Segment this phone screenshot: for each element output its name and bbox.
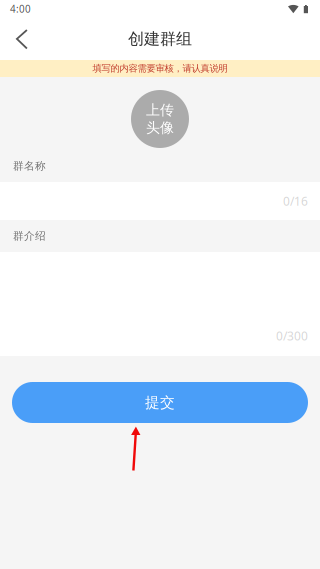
staticText: 提交 <box>145 393 175 412</box>
staticText: 群介绍 <box>13 229 46 243</box>
staticText: 0/300 <box>276 328 308 344</box>
staticText: 4:00 <box>10 2 31 16</box>
staticText: 上传 头像 <box>146 101 174 137</box>
staticText: 0/16 <box>283 193 308 209</box>
button[interactable]: 上传 头像 <box>131 90 189 148</box>
staticText: 创建群组 <box>128 29 192 49</box>
button[interactable]: 提交 <box>12 382 308 423</box>
staticText: 群名称 <box>13 159 46 173</box>
staticText: 填写的内容需要审核，请认真说明 <box>92 63 227 74</box>
button[interactable]: Back <box>0 20 41 60</box>
